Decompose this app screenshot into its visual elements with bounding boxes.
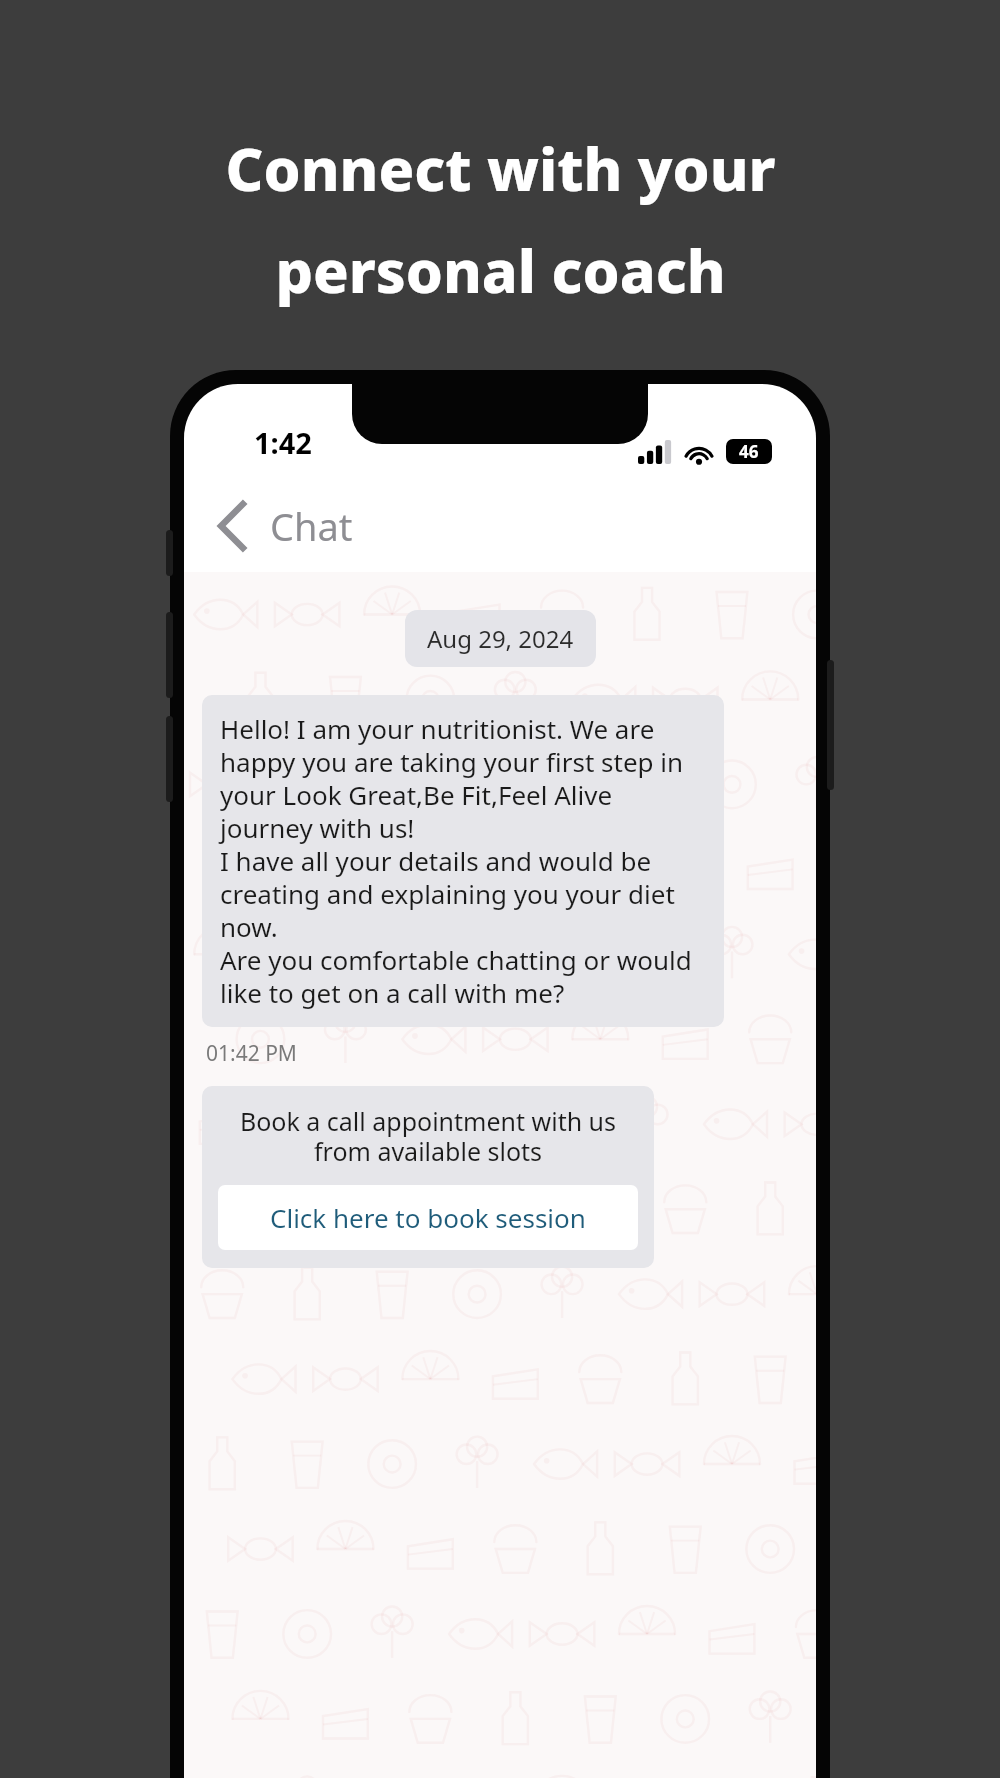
staticText: personal coach (275, 230, 726, 310)
staticText: Hello! I am your nutritionist. We are ha… (220, 711, 706, 1011)
staticText: 01:42 PM (206, 1039, 297, 1068)
button[interactable]: Hello! I am your nutritionist. We are ha… (202, 695, 724, 1027)
staticText: 1:42 (254, 423, 312, 462)
staticText: Click here to book session (270, 1200, 586, 1235)
staticText: Aug 29, 2024 (427, 622, 574, 655)
staticText: Chat (270, 500, 353, 552)
staticText: Book a call appointment with us from ava… (218, 1104, 638, 1169)
button[interactable]: Back (202, 496, 262, 556)
button[interactable]: Click here to book session (218, 1185, 638, 1250)
staticText: 46 (739, 440, 759, 463)
staticText: Connect with your (225, 128, 776, 208)
